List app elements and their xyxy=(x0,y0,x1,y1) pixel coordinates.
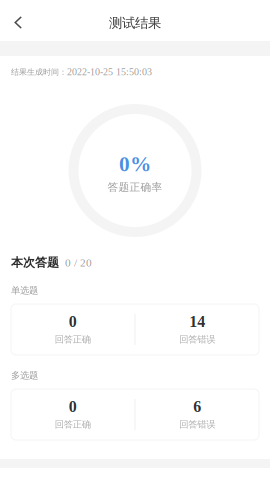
staticText: 6 xyxy=(193,398,201,415)
staticText: 单选题 xyxy=(11,285,38,296)
staticText: 回答正确 xyxy=(55,334,91,345)
staticText: 回答正确 xyxy=(55,419,91,430)
staticText: 0% xyxy=(119,152,151,176)
staticText: 测试结果 xyxy=(109,15,161,31)
staticText: 14 xyxy=(189,313,205,330)
staticText: 结果生成时间： xyxy=(11,67,67,77)
staticText: 0 / 20 xyxy=(65,256,92,269)
staticText: 回答错误 xyxy=(179,334,215,345)
staticText: 回答错误 xyxy=(179,419,215,430)
staticText: 本次答题 xyxy=(11,255,59,270)
staticText: 0 xyxy=(69,398,77,415)
staticText: 0 xyxy=(69,313,77,330)
staticText: 多选题 xyxy=(11,370,38,381)
staticText: 2022-10-25 15:50:03 xyxy=(67,66,152,78)
staticText: 答题正确率 xyxy=(107,181,162,194)
button[interactable]: 返回 xyxy=(0,0,36,41)
